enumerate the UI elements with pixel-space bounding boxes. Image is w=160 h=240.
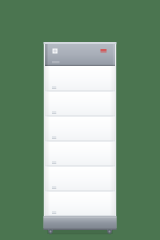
button[interactable]: Storage cabinet product image — [0, 0, 160, 240]
